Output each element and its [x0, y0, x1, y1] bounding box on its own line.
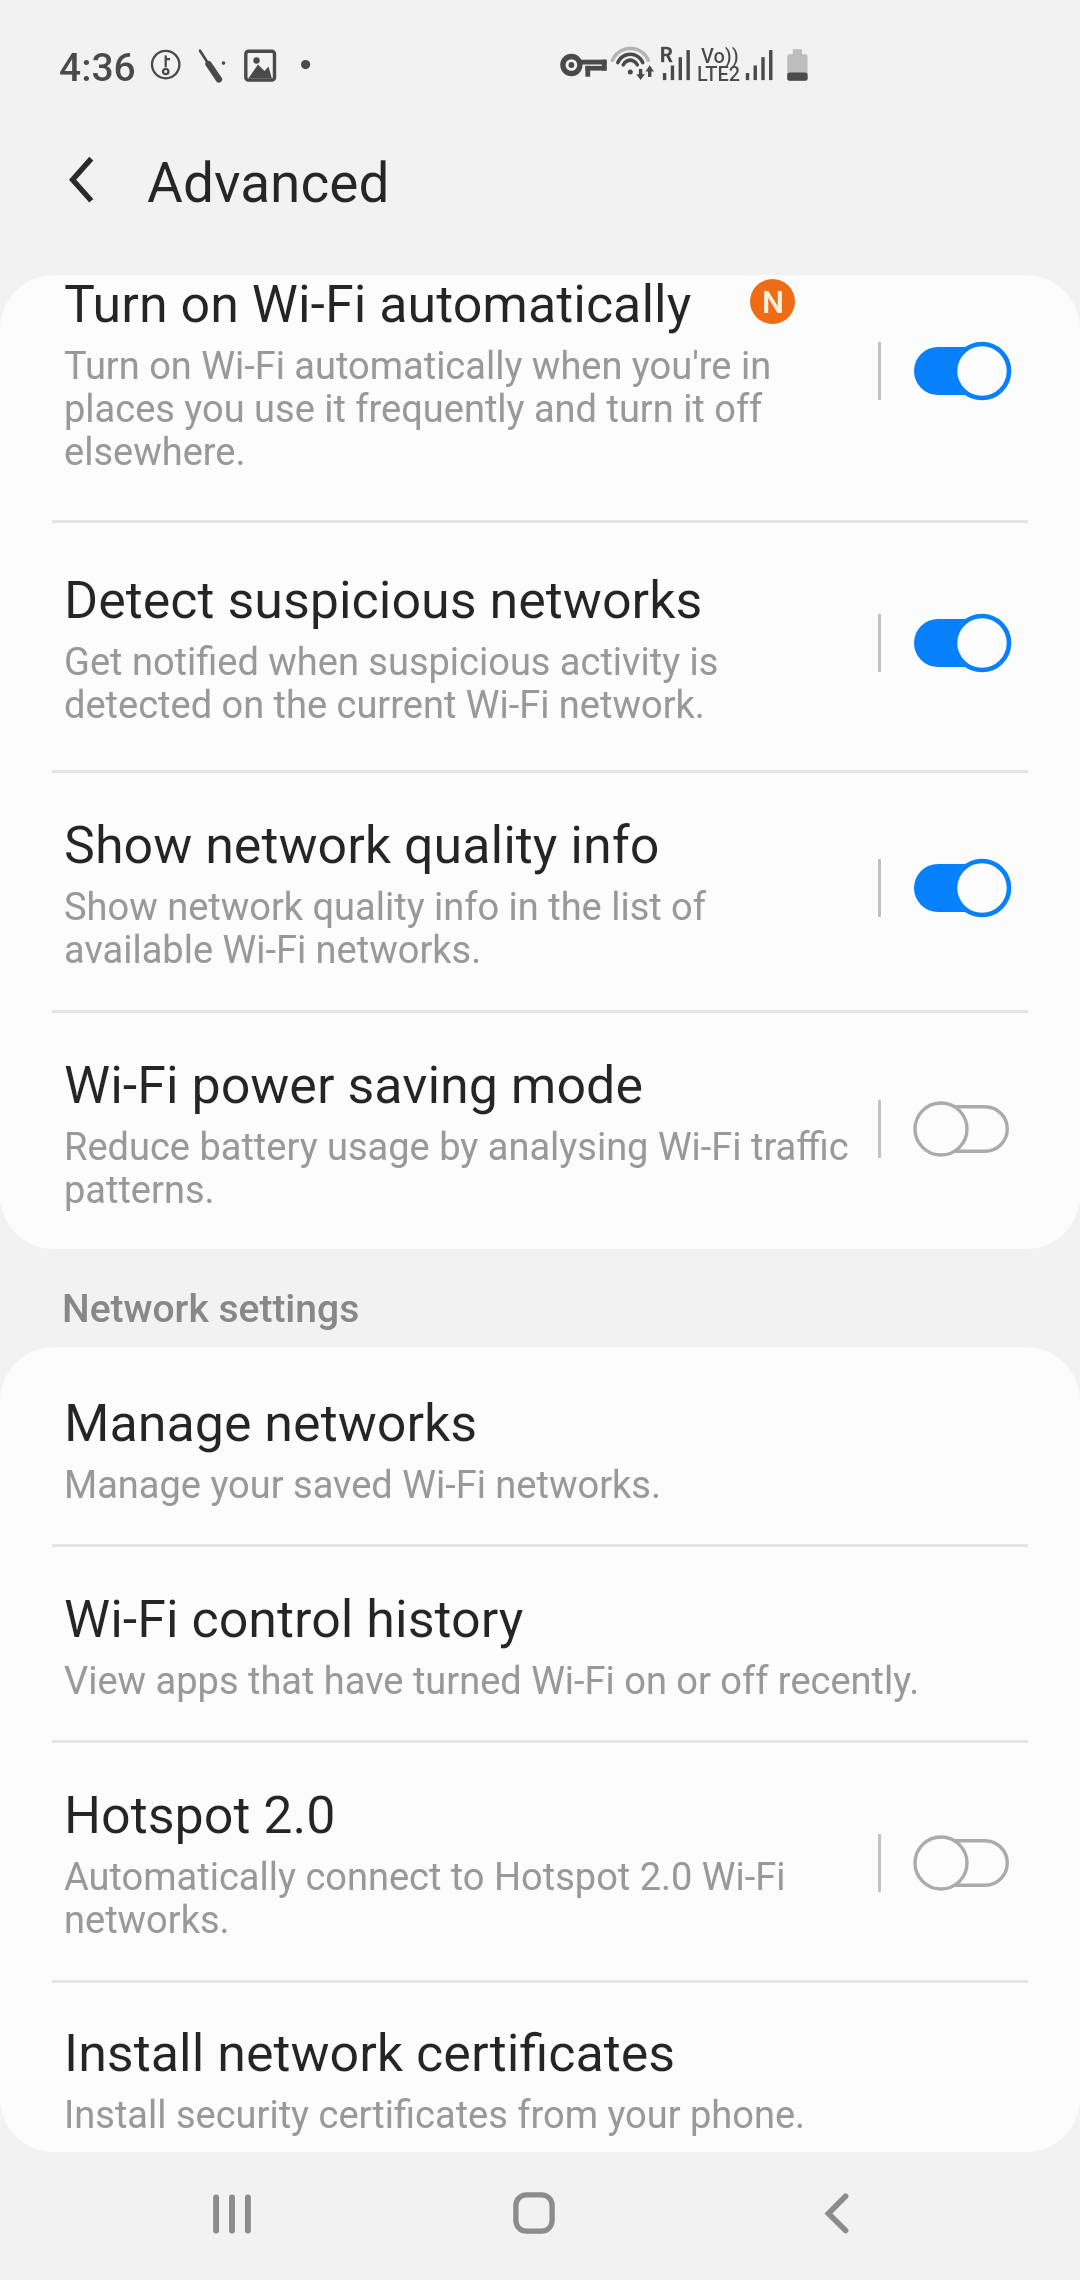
staticText: Show network quality info in the list of…	[64, 886, 706, 972]
staticText: Hotspot 2.0	[64, 1789, 336, 1845]
button[interactable]: Turn off	[900, 828, 1028, 948]
button[interactable]: Home	[474, 2153, 594, 2273]
button[interactable]: Hotspot 2.0	[0, 1743, 1080, 1980]
staticText: Manage networks	[64, 1397, 478, 1453]
staticText: 4:36	[59, 45, 136, 91]
staticText: Manage your saved Wi-Fi networks.	[64, 1464, 661, 1507]
staticText: Automatically connect to Hotspot 2.0 Wi-…	[64, 1856, 786, 1942]
staticText: Network settings	[62, 1286, 360, 1332]
staticText: View apps that have turned Wi-Fi on or o…	[64, 1660, 920, 1703]
staticText: Detect suspicious networks	[64, 574, 703, 630]
button[interactable]: Navigate up	[36, 136, 132, 232]
staticText: Vo))	[701, 44, 739, 67]
staticText: Wi-Fi control history	[64, 1593, 524, 1649]
button[interactable]: Turn on Wi-Fi automatically	[0, 275, 1080, 520]
button[interactable]: Recent apps	[172, 2154, 292, 2274]
staticText: Show network quality info	[64, 819, 660, 875]
button[interactable]: Turn on	[900, 1069, 1028, 1189]
button[interactable]: Wi-Fi control history	[0, 1547, 1080, 1740]
staticText: Wi-Fi power saving mode	[64, 1059, 644, 1115]
button[interactable]: Turn off	[900, 311, 1028, 431]
button[interactable]: Detect suspicious networks	[0, 523, 1080, 770]
staticText: Advanced	[147, 151, 390, 215]
staticText: Install security certificates from your …	[64, 2094, 806, 2137]
button[interactable]: Manage networks	[0, 1347, 1080, 1544]
staticText: Get notified when suspicious activity is…	[64, 641, 719, 727]
staticText: Turn on Wi-Fi automatically when you're …	[64, 345, 772, 474]
button[interactable]: Wi-Fi power saving mode	[0, 1013, 1080, 1249]
staticText: LTE2	[697, 62, 741, 85]
button[interactable]: Turn off	[900, 583, 1028, 703]
staticText: R	[660, 43, 673, 66]
staticText: Turn on Wi-Fi automatically	[64, 278, 692, 334]
button[interactable]: Install network certificates	[0, 1983, 1080, 2152]
button[interactable]: Back	[776, 2153, 896, 2273]
staticText: N	[762, 284, 784, 320]
staticText: Install network certificates	[64, 2027, 676, 2083]
button[interactable]: Turn on	[900, 1803, 1028, 1923]
staticText: Reduce battery usage by analysing Wi-Fi …	[64, 1126, 849, 1212]
button[interactable]: Show network quality info	[0, 773, 1080, 1010]
